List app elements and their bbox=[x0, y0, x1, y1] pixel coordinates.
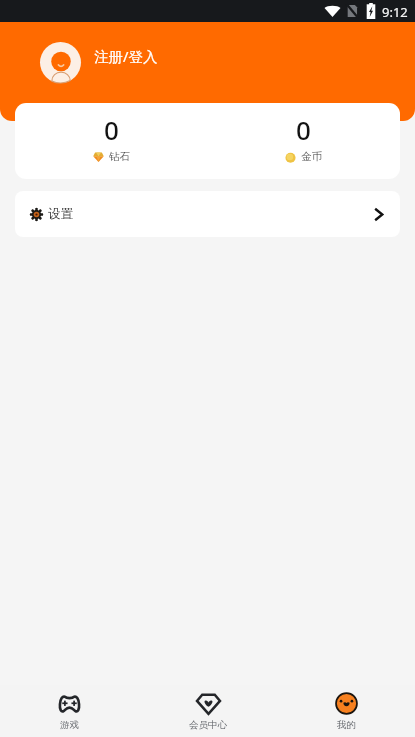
button[interactable]: 0 bbox=[15, 103, 207, 179]
button[interactable]: Mine bbox=[277, 685, 415, 737]
staticText: 游戏 bbox=[60, 719, 79, 731]
button[interactable]: Games bbox=[0, 685, 139, 737]
staticText: 0 bbox=[296, 112, 311, 147]
staticText: 注册/登入 bbox=[94, 46, 158, 66]
button[interactable]: 设置 bbox=[15, 191, 400, 237]
staticText: 9:12 bbox=[382, 3, 408, 21]
staticText: 钻石 bbox=[109, 150, 130, 163]
button[interactable]: Member center bbox=[139, 685, 277, 737]
staticText: 金币 bbox=[301, 150, 322, 163]
staticText: 我的 bbox=[337, 719, 356, 731]
staticText: 会员中心 bbox=[189, 719, 227, 731]
button[interactable]: 0 bbox=[207, 103, 400, 179]
staticText: 0 bbox=[104, 112, 119, 147]
staticText: 设置 bbox=[48, 206, 73, 222]
